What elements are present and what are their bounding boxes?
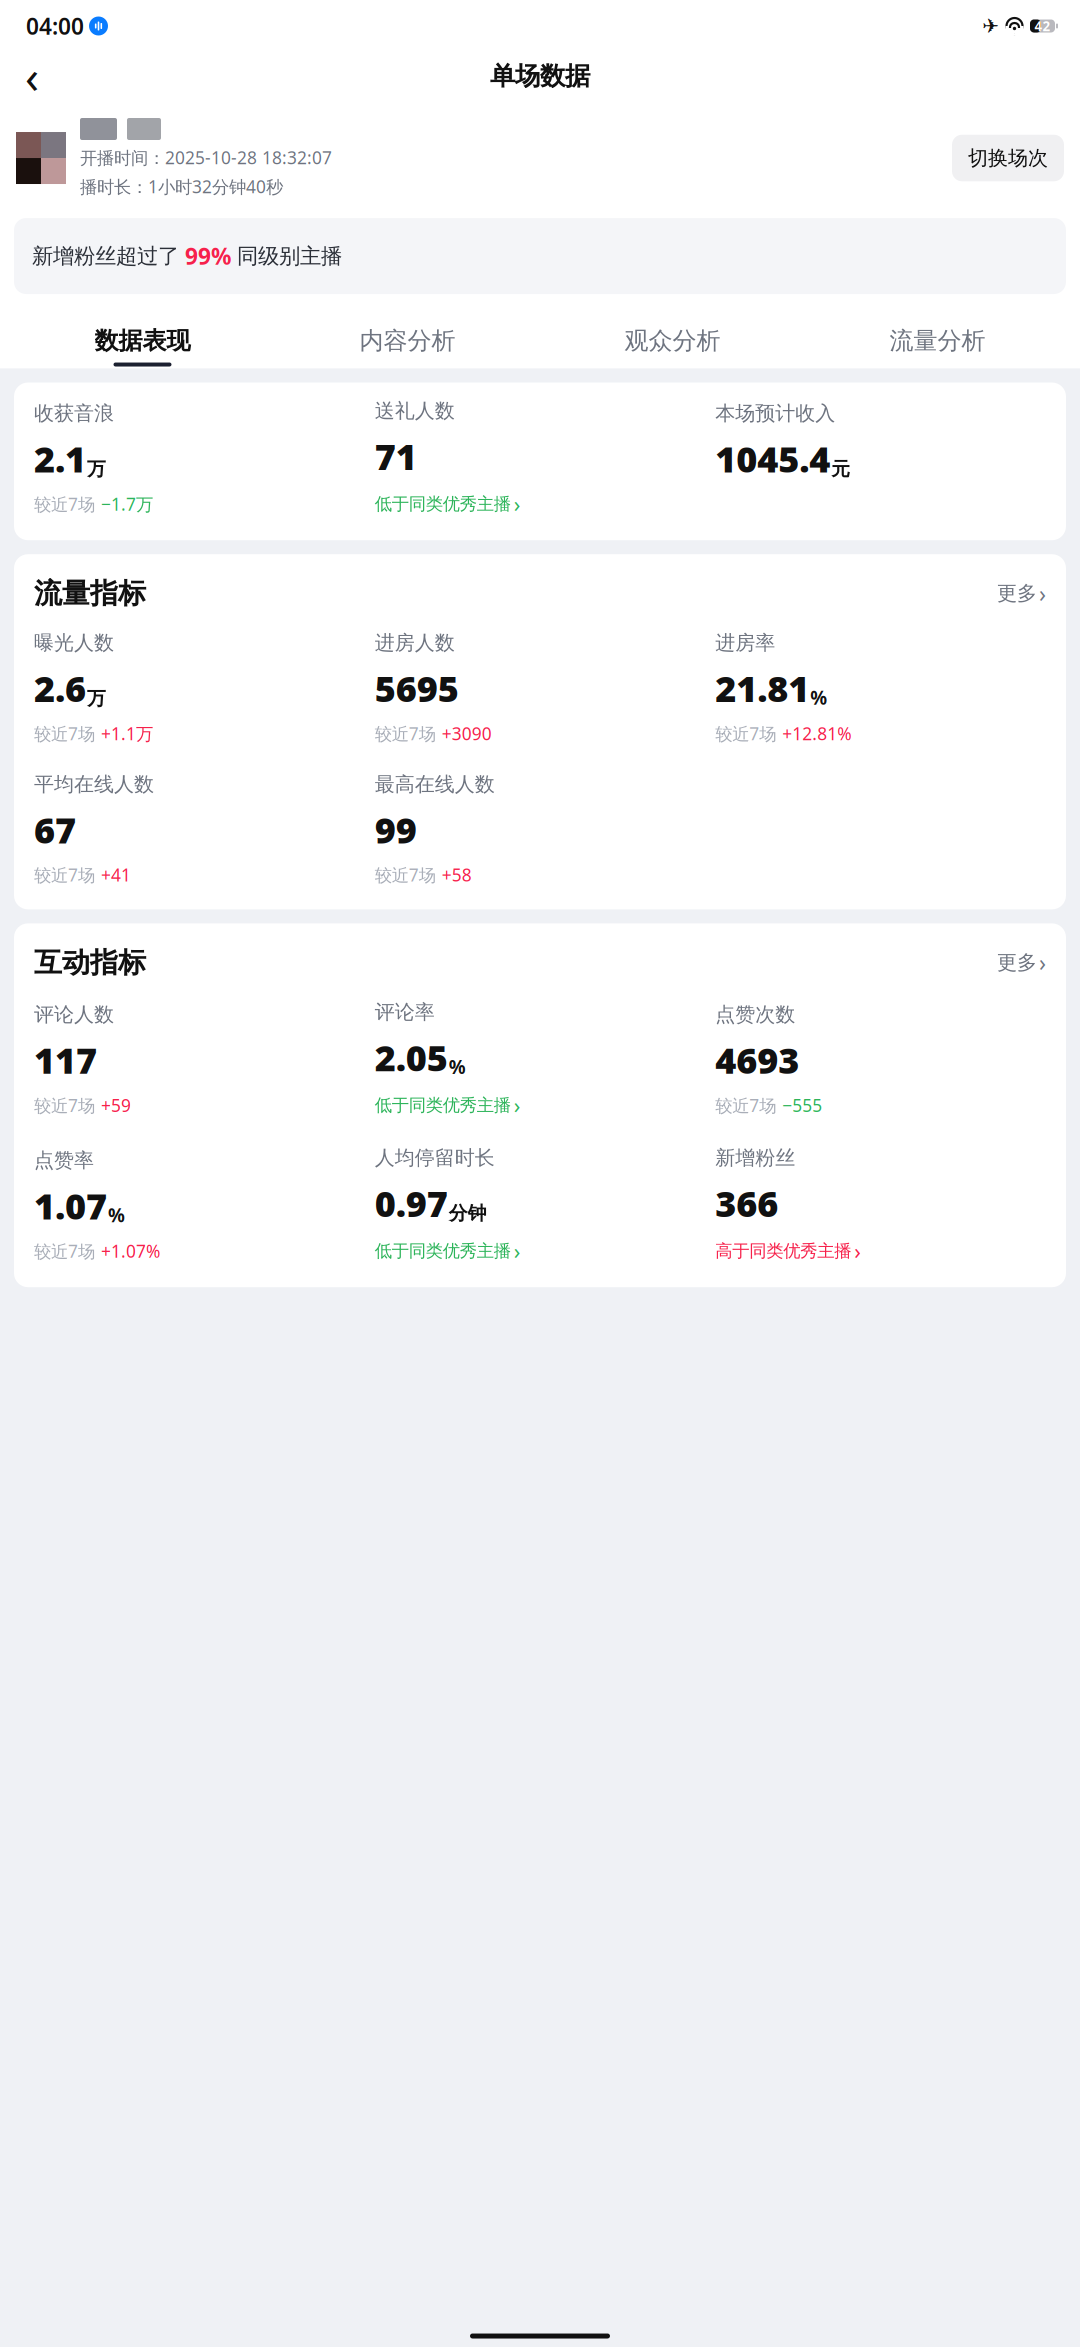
staticText: % [108,1203,125,1227]
button[interactable]: 数据表现 [10,316,275,368]
staticText: 71 [375,432,417,480]
staticText: 较近7场 [34,1094,95,1117]
staticText: +41 [101,863,131,886]
staticText: +1.07% [101,1239,160,1262]
staticText: › [514,1237,521,1265]
staticText: 流量指标 [34,576,146,611]
staticText: 切换场次 [968,146,1048,170]
staticText: 元 [831,458,850,480]
staticText: 较近7场 [375,863,436,886]
staticText: 万 [87,458,106,480]
staticText: +12.81% [782,722,851,745]
staticText: +58 [442,863,472,886]
staticText: 同级别主播 [231,243,342,269]
staticText: 较近7场 [34,722,95,745]
button[interactable]: 高于同类优秀主播 [715,1237,861,1265]
staticText: 2.6 [34,664,86,712]
staticText: 低于同类优秀主播 [375,1240,511,1262]
staticText: 互动指标 [34,945,146,980]
staticText: 较近7场 [34,492,95,515]
staticText: 较近7场 [375,722,436,745]
staticText: 数据表现 [94,326,190,355]
button[interactable]: 流量分析 [805,316,1070,368]
staticText: › [514,1091,521,1119]
staticText: 67 [34,806,76,853]
staticText: 开播时间：2025-10-28 18:32:07 [80,146,332,169]
button[interactable]: 更多 [997,578,1046,608]
staticText: 更多 [997,950,1037,975]
staticText: 评论人数 [34,1002,114,1027]
staticText: −555 [782,1094,822,1117]
staticText: 分钟 [449,1202,487,1225]
staticText: 21.81 [715,664,809,712]
staticText: 点赞率 [34,1148,94,1173]
staticText: 99 [375,806,417,853]
staticText: 较近7场 [715,722,776,745]
staticText: 最高在线人数 [375,772,495,797]
button[interactable]: 内容分析 [275,316,540,368]
staticText: 0.97 [375,1179,448,1227]
button[interactable]: 观众分析 [540,316,805,368]
staticText: 04:00 [26,11,84,41]
staticText: › [854,1237,861,1265]
staticText: 42 [1034,17,1050,35]
staticText: 平均在线人数 [34,772,154,797]
staticText: % [810,685,827,710]
staticText: 低于同类优秀主播 [375,1095,511,1116]
staticText: › [514,490,521,518]
staticText: 本场预计收入 [715,401,835,426]
staticText: 较近7场 [34,1239,95,1262]
staticText: 117 [34,1036,97,1084]
staticText: ‹ [25,46,39,106]
staticText: 内容分析 [359,326,455,355]
staticText: 人均停留时长 [375,1145,495,1170]
button[interactable]: 切换场次 [952,135,1064,181]
staticText: 万 [87,687,106,710]
staticText: › [1039,947,1046,978]
staticText: 较近7场 [34,863,95,886]
button[interactable]: 低于同类优秀主播 [375,490,521,518]
staticText: % [449,1054,466,1079]
staticText: 单场数据 [490,60,590,91]
staticText: 曝光人数 [34,631,114,655]
staticText: 进房人数 [375,631,455,655]
staticText: 高于同类优秀主播 [715,1240,851,1262]
staticText: 较近7场 [715,1094,776,1117]
button[interactable]: 返回 [10,54,54,98]
staticText: 新增粉丝超过了 [32,243,185,269]
staticText: +1.1万 [101,722,153,745]
staticText: 评论率 [375,1000,435,1024]
staticText: 1.07 [34,1182,107,1229]
staticText: 2.05 [375,1033,448,1081]
staticText: +59 [101,1094,131,1117]
staticText: 进房率 [715,631,775,655]
staticText: 366 [715,1179,778,1227]
staticText: 新增粉丝 [715,1145,795,1170]
button[interactable]: 更多 [997,947,1046,978]
button[interactable]: 低于同类优秀主播 [375,1237,521,1265]
staticText: 5695 [375,664,459,712]
staticText: 99% [185,241,231,271]
staticText: 低于同类优秀主播 [375,493,511,515]
staticText: 收获音浪 [34,401,114,426]
staticText: −1.7万 [101,492,153,515]
staticText: 2.1 [34,435,86,482]
staticText: 观众分析 [624,326,720,355]
staticText: 1045.4 [715,435,830,482]
staticText: 点赞次数 [715,1002,795,1027]
staticText: ✈ [982,15,999,37]
staticText: 流量分析 [889,326,985,355]
staticText: 播时长：1小时32分钟40秒 [80,175,283,198]
staticText: › [1039,578,1046,608]
staticText: 更多 [997,581,1037,606]
staticText: 4693 [715,1036,799,1084]
button[interactable]: 低于同类优秀主播 [375,1091,521,1119]
staticText: 送礼人数 [375,398,455,423]
staticText: +3090 [442,722,492,745]
